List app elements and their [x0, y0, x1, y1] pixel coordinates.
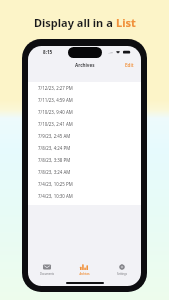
staticText: List — [116, 15, 136, 30]
staticText: Settings — [117, 272, 127, 276]
staticText: 7/8/23, 3:38 PM — [38, 157, 71, 163]
button[interactable]: Archives — [65, 264, 103, 278]
button[interactable]: 7/8/23, 3:38 PM — [28, 154, 141, 166]
staticText: Archives — [79, 272, 90, 276]
staticText: 7/8/23, 4:24 PM — [38, 145, 71, 151]
button[interactable]: 7/8/23, 4:24 PM — [28, 142, 141, 154]
staticText: 7/8/23, 3:24 AM — [38, 169, 71, 175]
staticText: Archives — [75, 62, 95, 68]
staticText: 7/4/23, 10:30 AM — [38, 193, 73, 199]
staticText: 7/10/23, 9:40 AM — [38, 109, 73, 115]
button[interactable]: 7/4/23, 10:30 AM — [28, 190, 141, 202]
button[interactable]: Edit — [118, 59, 141, 70]
staticText: 7/4/23, 10:25 PM — [38, 181, 73, 187]
button[interactable]: Documents — [28, 264, 65, 278]
staticText: 7/11/23, 4:59 AM — [38, 97, 73, 103]
staticText: 7/12/23, 2:27 PM — [38, 85, 73, 91]
button[interactable]: 7/4/23, 10:25 PM — [28, 178, 141, 190]
staticText: 7/9/23, 2:45 AM — [38, 133, 71, 139]
button[interactable]: Settings — [103, 264, 141, 278]
button[interactable]: 7/9/23, 2:45 AM — [28, 130, 141, 142]
staticText: Documents — [40, 272, 54, 276]
button[interactable]: 7/10/23, 2:41 AM — [28, 118, 141, 130]
button[interactable]: 7/10/23, 9:40 AM — [28, 106, 141, 118]
staticText: Edit — [125, 62, 134, 67]
staticText: Display all in a — [34, 15, 116, 30]
button[interactable]: 7/8/23, 3:24 AM — [28, 166, 141, 178]
button[interactable]: 7/12/23, 2:27 PM — [28, 82, 141, 94]
staticText: 8:15 — [43, 49, 53, 55]
staticText: 7/10/23, 2:41 AM — [38, 121, 73, 127]
button[interactable]: 7/11/23, 4:59 AM — [28, 94, 141, 106]
